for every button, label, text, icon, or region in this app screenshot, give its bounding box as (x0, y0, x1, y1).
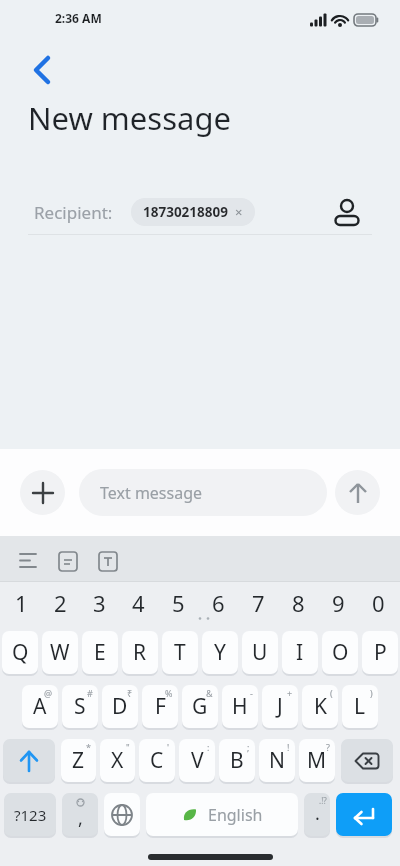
staticText: 2:36 AM (55, 10, 102, 26)
button[interactable]: C (139, 739, 175, 782)
button[interactable]: , (62, 793, 98, 836)
button[interactable] (104, 793, 140, 836)
staticText: V (191, 746, 204, 775)
staticText: @ (44, 687, 53, 699)
button[interactable]: X (100, 739, 135, 782)
button[interactable] (335, 470, 380, 515)
staticText: Recipient: (34, 201, 113, 224)
button[interactable]: 0 (358, 588, 398, 618)
button[interactable]: U (242, 631, 278, 674)
button[interactable] (3, 739, 55, 782)
button[interactable]: R (122, 631, 158, 674)
button[interactable]: 4 (119, 588, 158, 618)
staticText: 5 (172, 588, 185, 618)
button[interactable]: E (82, 631, 118, 674)
staticText: K (314, 692, 327, 721)
staticText: 8 (292, 588, 305, 618)
button[interactable] (334, 197, 360, 227)
staticText: + (287, 687, 293, 699)
staticText: .!? (319, 795, 327, 806)
button[interactable]: 5 (158, 588, 198, 618)
button[interactable]: J (262, 685, 298, 728)
button[interactable]: H (222, 685, 258, 728)
button[interactable]: 1 (2, 588, 41, 618)
button[interactable]: B (219, 739, 255, 782)
staticText: 9 (332, 588, 345, 618)
button[interactable]: O (322, 631, 358, 674)
staticText: Y (214, 638, 226, 667)
staticText: , (78, 806, 83, 831)
staticText: G (192, 692, 208, 721)
staticText: 7 (252, 588, 265, 618)
button[interactable]: F (142, 685, 178, 728)
button[interactable] (336, 793, 392, 836)
staticText: E (94, 638, 106, 667)
staticText: O (332, 638, 349, 667)
staticText: ? (326, 741, 330, 753)
button[interactable]: I (282, 631, 318, 674)
staticText: English (208, 804, 263, 826)
button[interactable]: 2 (41, 588, 80, 618)
button[interactable] (20, 470, 65, 515)
staticText: - (250, 687, 253, 699)
button[interactable] (34, 56, 50, 84)
button[interactable]: Text message (79, 469, 327, 516)
staticText: I (296, 638, 304, 667)
staticText: A (33, 692, 47, 721)
button[interactable]: 3 (80, 588, 119, 618)
staticText: ?123 (14, 805, 47, 825)
button[interactable]: 8 (278, 588, 318, 618)
button[interactable]: K (302, 685, 338, 728)
button[interactable]: G (182, 685, 218, 728)
staticText: ' (167, 741, 170, 753)
button[interactable]: S (62, 685, 98, 728)
button[interactable]: Q (2, 631, 38, 674)
staticText: 6 (212, 588, 225, 618)
button[interactable]: W (42, 631, 78, 674)
staticText: J (277, 692, 283, 721)
button[interactable]: D (102, 685, 138, 728)
button[interactable]: L (342, 685, 378, 728)
button[interactable]: English (146, 793, 298, 836)
staticText: : (207, 741, 210, 753)
staticText: . (315, 801, 320, 826)
staticText: T (174, 638, 186, 667)
button[interactable]: 9 (318, 588, 358, 618)
staticText: U (252, 638, 268, 667)
staticText: " (126, 741, 130, 753)
staticText: ₹ (127, 687, 133, 699)
button[interactable]: 6 (198, 588, 238, 618)
staticText: R (133, 638, 147, 667)
staticText: X (111, 746, 124, 775)
staticText: ! (287, 741, 290, 753)
button[interactable]: . (304, 793, 330, 836)
staticText: W (50, 638, 70, 667)
button[interactable]: Z (61, 739, 96, 782)
button[interactable]: ?123 (4, 793, 56, 836)
staticText: ) (370, 687, 373, 699)
staticText: S (74, 692, 86, 721)
button[interactable]: V (179, 739, 215, 782)
staticText: H (232, 692, 248, 721)
button[interactable]: A (22, 685, 58, 728)
staticText: 4 (132, 588, 145, 618)
button[interactable]: 7 (238, 588, 278, 618)
staticText: # (87, 687, 93, 699)
button[interactable]: Y (202, 631, 238, 674)
staticText: Q (12, 638, 29, 667)
staticText: B (230, 746, 244, 775)
button[interactable] (341, 739, 393, 782)
button[interactable]: P (362, 631, 398, 674)
button[interactable]: N (259, 739, 295, 782)
button[interactable] (20, 552, 118, 572)
button[interactable]: M (299, 739, 335, 782)
staticText: % (165, 687, 173, 699)
staticText: C (150, 746, 164, 775)
staticText: * (86, 741, 91, 753)
staticText: F (155, 692, 166, 721)
staticText: 18730218809 (143, 203, 228, 221)
staticText: ( (330, 687, 333, 699)
staticText: ; (247, 741, 250, 753)
button[interactable]: T (162, 631, 198, 674)
button[interactable]: 18730218809 (131, 198, 255, 226)
